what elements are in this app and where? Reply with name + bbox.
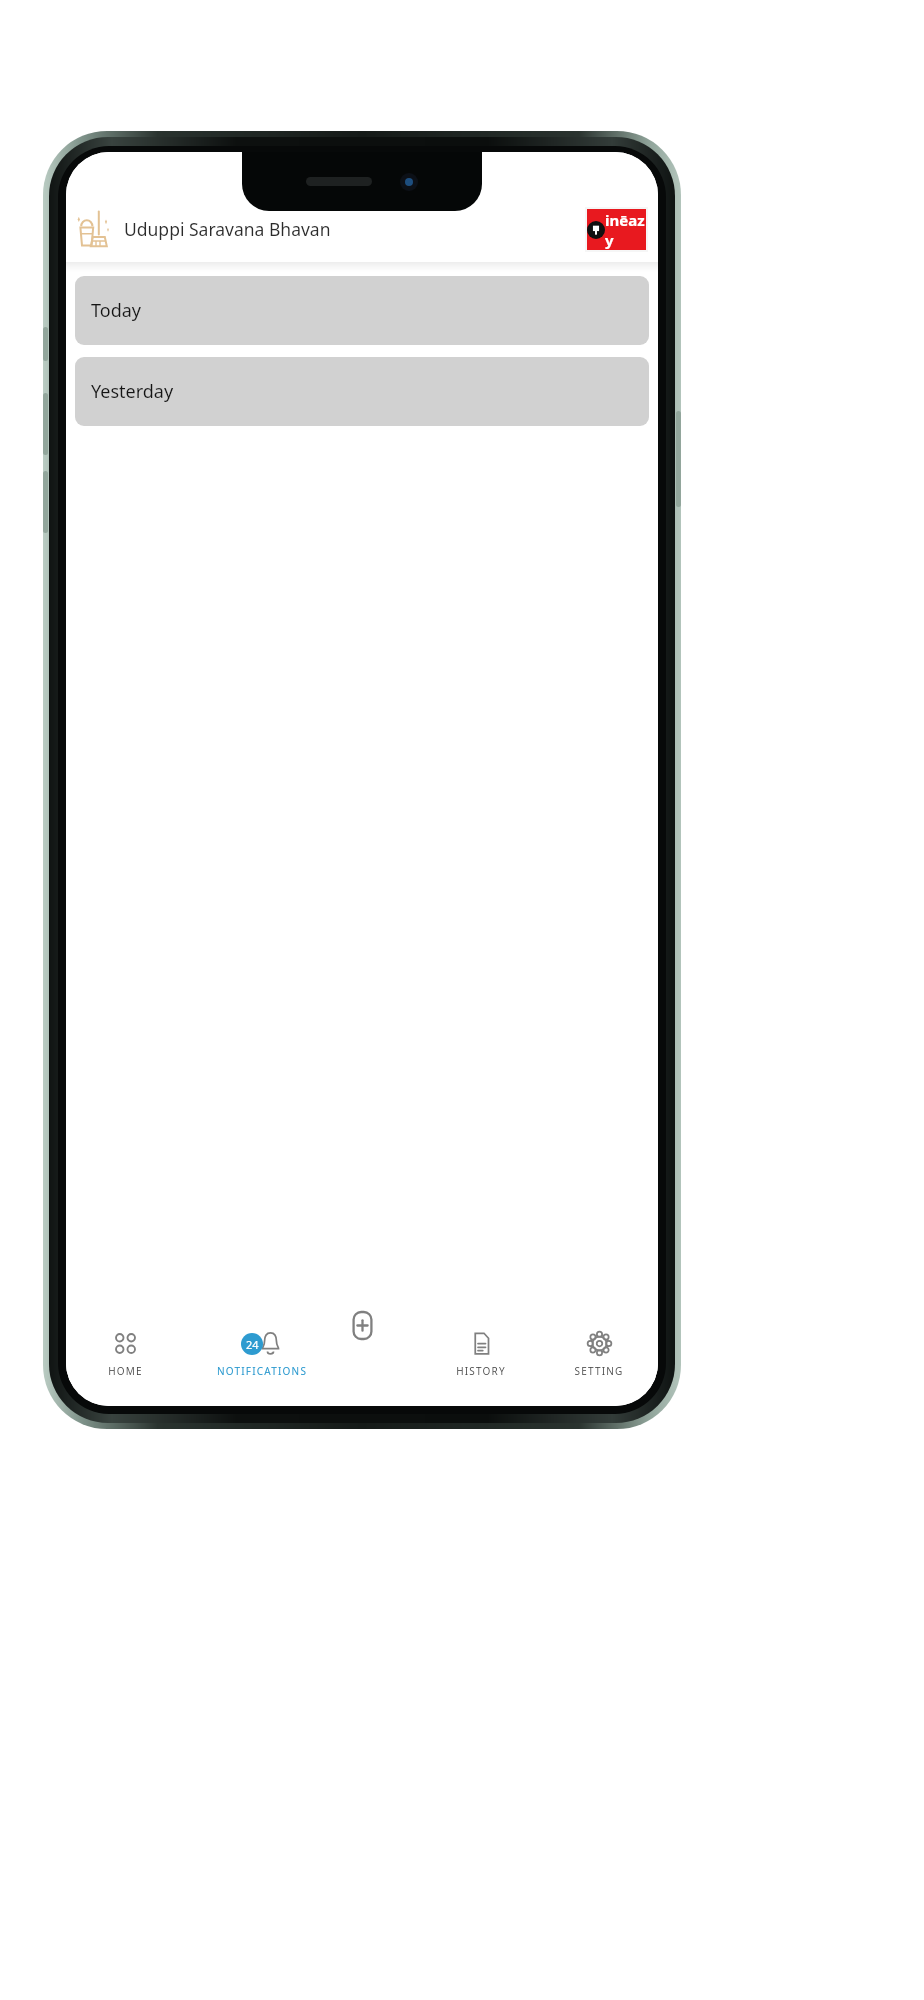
button[interactable]: HISTORY <box>422 1318 540 1390</box>
button[interactable]: HOME <box>66 1318 185 1390</box>
staticText: SETTING <box>574 1364 624 1378</box>
button[interactable]: Dineazy <box>587 209 646 250</box>
button[interactable]: 24 <box>185 1318 339 1390</box>
staticText: inēazy <box>605 210 646 250</box>
staticText: Yesterday <box>91 379 174 404</box>
staticText: Uduppi Saravana Bhavan <box>124 217 331 241</box>
staticText: 24 <box>246 1337 259 1352</box>
button[interactable]: Yesterday <box>75 357 649 426</box>
button[interactable]: Today <box>75 276 649 345</box>
staticText: HOME <box>108 1364 143 1378</box>
staticText: Today <box>91 298 141 323</box>
button[interactable]: SETTING <box>540 1318 658 1390</box>
staticText: HISTORY <box>456 1364 506 1378</box>
button[interactable]: Add <box>333 1296 391 1354</box>
staticText: NOTIFICATIONS <box>217 1364 308 1378</box>
